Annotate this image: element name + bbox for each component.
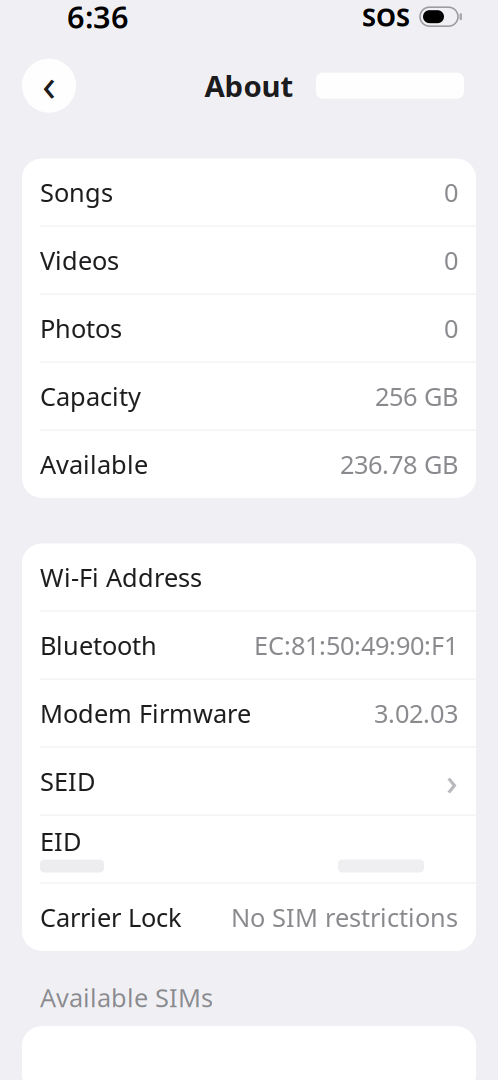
staticText: 6:36 xyxy=(67,0,129,37)
button[interactable]: SEID xyxy=(22,748,476,815)
staticText: About xyxy=(204,66,293,105)
button[interactable]: Photos xyxy=(22,295,476,362)
staticText: Videos xyxy=(40,243,119,277)
staticText: SOS xyxy=(362,0,410,33)
staticText: › xyxy=(446,757,458,805)
staticText: 256 GB xyxy=(375,379,458,413)
staticText: Carrier Lock xyxy=(40,900,182,934)
staticText: 3.02.03 xyxy=(374,696,458,730)
button[interactable]: Available xyxy=(22,431,476,498)
staticText: 0 xyxy=(444,311,458,345)
staticText: 236.78 GB xyxy=(340,447,458,481)
staticText: ‹ xyxy=(42,54,56,114)
button[interactable]: Videos xyxy=(22,227,476,294)
staticText: No SIM restrictions xyxy=(231,900,458,934)
button[interactable]: Capacity xyxy=(22,363,476,430)
staticText: Photos xyxy=(40,311,122,345)
staticText: Modem Firmware xyxy=(40,696,251,730)
staticText: Songs xyxy=(40,175,113,209)
staticText: 0 xyxy=(444,175,458,209)
staticText: Available SIMs xyxy=(40,981,213,1014)
button[interactable]: Back xyxy=(22,59,76,113)
button[interactable]: Carrier Lock xyxy=(22,884,476,951)
staticText: Available xyxy=(40,447,148,481)
button[interactable]: Songs xyxy=(22,159,476,226)
staticText: Capacity xyxy=(40,379,141,413)
staticText: EID xyxy=(40,824,81,858)
staticText: Wi-Fi Address xyxy=(40,560,202,594)
staticText: Bluetooth xyxy=(40,628,157,662)
staticText: EC:81:50:49:90:F1 xyxy=(254,628,458,662)
staticText: 0 xyxy=(444,243,458,277)
button[interactable]: Bluetooth xyxy=(22,612,476,679)
staticText: SEID xyxy=(40,764,95,798)
button[interactable]: Wi-Fi Address xyxy=(22,544,476,611)
button[interactable]: Modem Firmware xyxy=(22,680,476,747)
